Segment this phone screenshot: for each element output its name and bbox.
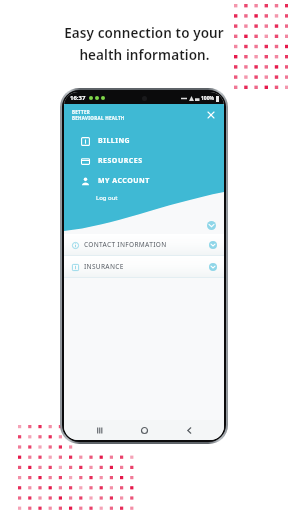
button[interactable]: Recents (91, 421, 109, 439)
staticText: 16:37 (70, 94, 86, 102)
button[interactable]: INSURANCE (64, 256, 224, 277)
button[interactable]: CONTACT INFORMATION (64, 234, 224, 255)
button[interactable]: Home (135, 421, 153, 439)
staticText: health information. (79, 46, 210, 64)
staticText: BILLING (98, 136, 131, 146)
button[interactable]: Back (180, 421, 198, 439)
button[interactable]: Close (205, 109, 217, 121)
staticText: INSURANCE (84, 262, 124, 271)
staticText: Log out (96, 194, 118, 202)
staticText: RESOURCES (98, 156, 143, 166)
staticText: MY ACCOUNT (98, 176, 150, 186)
staticText: CONTACT INFORMATION (84, 240, 167, 249)
staticText: BETTER (72, 109, 91, 115)
button[interactable]: RESOURCES (64, 151, 224, 171)
button[interactable]: BILLING (64, 131, 224, 151)
staticText: BEHAVIORAL HEALTH (72, 115, 125, 121)
button[interactable]: MY ACCOUNT (64, 171, 224, 191)
staticText: Easy connection to your (64, 24, 224, 42)
staticText: 100% (201, 95, 215, 102)
button[interactable]: Log out (96, 191, 224, 205)
